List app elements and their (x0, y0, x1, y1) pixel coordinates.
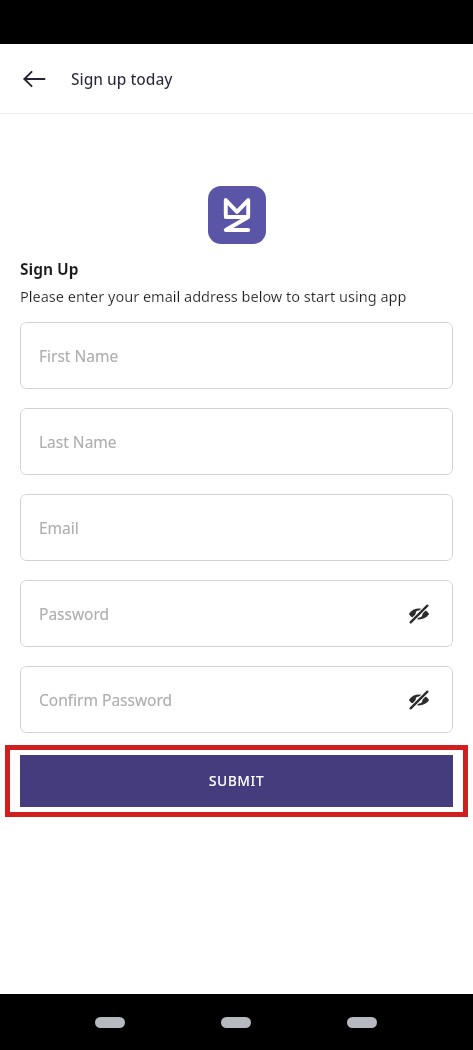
button[interactable]: Confirm Password (20, 666, 453, 733)
button[interactable]: Back (12, 57, 56, 101)
button[interactable]: Back (95, 1017, 125, 1028)
staticText: Sign Up (20, 258, 79, 279)
button[interactable]: Last Name (20, 408, 453, 475)
staticText: Email (39, 517, 79, 538)
button[interactable]: First Name (20, 322, 453, 389)
staticText: SUBMIT (209, 772, 265, 790)
button[interactable]: Home (221, 1017, 251, 1028)
button[interactable]: Email (20, 494, 453, 561)
staticText: Password (39, 603, 110, 624)
button[interactable]: Toggle password visibility (404, 685, 434, 715)
staticText: Sign up today (71, 68, 173, 89)
button[interactable]: Password (20, 580, 453, 647)
button[interactable]: SUBMIT (20, 755, 453, 807)
staticText: Last Name (39, 431, 117, 452)
staticText: Please enter your email address below to… (20, 286, 407, 306)
button[interactable]: Toggle password visibility (404, 599, 434, 629)
staticText: First Name (39, 345, 119, 366)
staticText: Confirm Password (39, 689, 173, 710)
button[interactable]: Recents (347, 1017, 377, 1028)
